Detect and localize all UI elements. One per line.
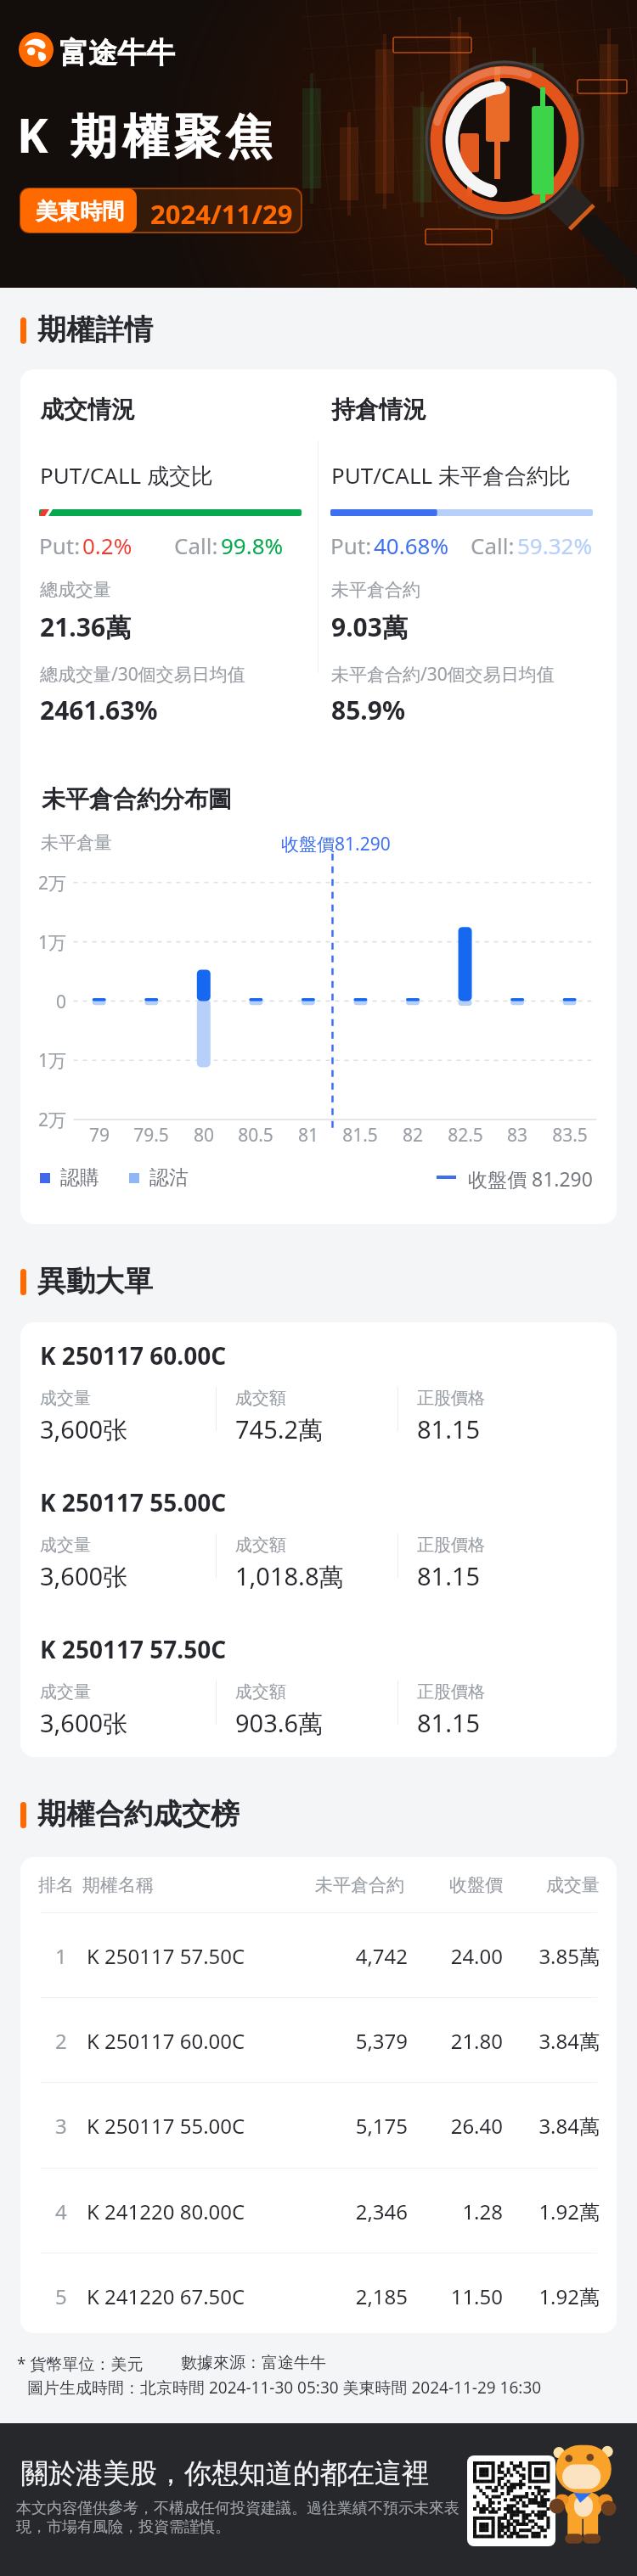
- staticText: 認購: [60, 1165, 99, 1190]
- staticText: 關於港美股，你想知道的都在這裡: [21, 2456, 429, 2490]
- staticText: K 241220 80.00C: [87, 2197, 245, 2225]
- staticText: 9.03萬: [331, 609, 408, 644]
- staticText: 5,379: [255, 2027, 408, 2055]
- staticText: 成交額: [235, 1535, 286, 1556]
- staticText: 26.40: [401, 2112, 503, 2140]
- staticText: 2万: [20, 1108, 66, 1132]
- staticText: 80: [174, 1123, 234, 1148]
- staticText: 期權詳情: [37, 311, 153, 348]
- staticText: 2,346: [255, 2197, 408, 2225]
- staticText: 1,018.8萬: [235, 1559, 344, 1593]
- staticText: Call:: [174, 530, 218, 560]
- staticText: 3.84萬: [498, 2112, 600, 2140]
- button[interactable]: 美東時間: [20, 188, 302, 233]
- staticText: 80.5: [226, 1123, 285, 1148]
- staticText: 1.92萬: [498, 2282, 600, 2310]
- staticText: 21.80: [401, 2027, 503, 2055]
- staticText: 期權名稱: [82, 1874, 154, 1896]
- staticText: Put:: [39, 530, 81, 560]
- button[interactable]: Scan QR code: [467, 2455, 555, 2546]
- staticText: 成交量: [498, 1874, 600, 1896]
- staticText: 本文内容僅供參考，不構成任何投資建議。過往業績不預示未來表: [16, 2499, 459, 2518]
- staticText: 0.2%: [82, 530, 132, 560]
- staticText: 成交量: [40, 1388, 91, 1409]
- staticText: 40.68%: [374, 530, 449, 560]
- staticText: 4,742: [255, 1942, 408, 1970]
- staticText: PUT/CALL 成交比: [40, 460, 213, 491]
- staticText: 正股價格: [417, 1681, 485, 1703]
- staticText: 2,185: [255, 2282, 408, 2310]
- staticText: 成交量: [40, 1681, 91, 1703]
- staticText: 成交額: [235, 1388, 286, 1409]
- staticText: Call:: [471, 530, 515, 560]
- staticText: 1.92萬: [498, 2197, 600, 2225]
- staticText: 成交額: [235, 1681, 286, 1703]
- button[interactable]: K 250117 55.00C: [20, 1486, 617, 1615]
- staticText: K 250117 57.50C: [40, 1633, 227, 1665]
- staticText: 83: [488, 1123, 547, 1148]
- button[interactable]: K 250117 57.50C: [20, 1633, 617, 1757]
- staticText: 持倉情況: [331, 395, 426, 424]
- staticText: 2461.63%: [40, 693, 158, 727]
- staticText: 903.6萬: [235, 1706, 324, 1740]
- button[interactable]: 3: [20, 2083, 617, 2167]
- staticText: 81: [279, 1123, 338, 1148]
- staticText: 59.32%: [517, 530, 593, 560]
- staticText: 未平倉合約: [251, 1874, 404, 1896]
- staticText: 85.9%: [331, 693, 405, 727]
- staticText: K 241220 67.50C: [87, 2282, 245, 2310]
- staticText: 3,600张: [40, 1412, 128, 1446]
- staticText: 收盤價: [401, 1874, 503, 1896]
- staticText: * 貨幣單位：美元: [17, 2353, 144, 2375]
- staticText: 2万: [20, 871, 66, 895]
- staticText: 81.5: [330, 1123, 390, 1148]
- staticText: K 250117 60.00C: [40, 1339, 227, 1372]
- staticText: 收盤價81.290: [281, 832, 391, 856]
- staticText: 成交量: [40, 1535, 91, 1556]
- staticText: 24.00: [401, 1942, 503, 1970]
- staticText: 期權合約成交榜: [37, 1796, 240, 1832]
- staticText: K 250117 55.00C: [40, 1486, 227, 1518]
- staticText: 美東時間: [36, 198, 124, 226]
- other: Futubull logo: [19, 32, 54, 67]
- staticText: 正股價格: [417, 1388, 485, 1409]
- staticText: K 250117 57.50C: [87, 1942, 245, 1970]
- button[interactable]: K 250117 60.00C: [20, 1339, 617, 1468]
- staticText: 0: [20, 990, 66, 1014]
- staticText: K 250117 55.00C: [87, 2112, 245, 2140]
- staticText: 未平倉合約分布圖: [42, 784, 232, 814]
- staticText: 3,600张: [40, 1706, 128, 1740]
- staticText: 1万: [20, 1048, 66, 1073]
- button[interactable]: 1: [20, 1913, 617, 1997]
- staticText: 11.50: [401, 2282, 503, 2310]
- staticText: 排名: [38, 1874, 74, 1896]
- staticText: 82: [383, 1123, 443, 1148]
- staticText: 2024/11/29: [150, 196, 293, 232]
- staticText: K 250117 60.00C: [87, 2027, 245, 2055]
- staticText: 82.5: [436, 1123, 495, 1148]
- staticText: 總成交量: [40, 579, 111, 601]
- staticText: Put:: [330, 530, 372, 560]
- staticText: 3: [55, 2112, 67, 2140]
- staticText: 1万: [20, 930, 66, 955]
- staticText: 1.28: [401, 2197, 503, 2225]
- staticText: 未平倉合約: [331, 579, 420, 601]
- staticText: 5,175: [255, 2112, 408, 2140]
- staticText: 21.36萬: [40, 609, 132, 644]
- staticText: 未平倉合約/30個交易日均值: [331, 662, 555, 687]
- staticText: 3.85萬: [498, 1942, 600, 1970]
- staticText: 圖片生成時間：北京時間 2024-11-30 05:30 美東時間 2024-1…: [27, 2377, 542, 2399]
- button[interactable]: 4: [20, 2169, 617, 2253]
- staticText: 異動大單: [37, 1263, 153, 1299]
- staticText: PUT/CALL 未平倉合約比: [331, 460, 571, 491]
- staticText: 2: [55, 2027, 67, 2055]
- staticText: 79.5: [121, 1123, 181, 1148]
- button[interactable]: 2: [20, 1998, 617, 2082]
- staticText: 認沽: [149, 1165, 189, 1190]
- staticText: 1: [55, 1942, 67, 1970]
- staticText: 3.84萬: [498, 2027, 600, 2055]
- staticText: 總成交量/30個交易日均值: [40, 662, 245, 687]
- staticText: 99.8%: [221, 530, 284, 560]
- button[interactable]: 5: [20, 2253, 617, 2333]
- staticText: 數據來源：富途牛牛: [181, 2353, 326, 2373]
